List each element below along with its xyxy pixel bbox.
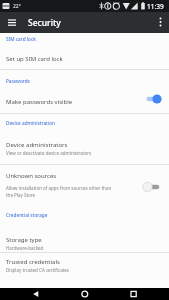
button[interactable] (4, 16, 20, 30)
staticText: Allow installation of apps from sources … (6, 185, 112, 191)
button[interactable] (154, 16, 167, 30)
staticText: 11:39 (147, 2, 164, 11)
staticText: the Play Store (6, 192, 36, 198)
button[interactable]: Set up SIM card lock (0, 50, 169, 69)
staticText: Device administration (6, 120, 55, 126)
staticText: View or deactivate device administrators (6, 150, 92, 156)
staticText: Security (28, 17, 61, 29)
staticText: Storage type (6, 236, 42, 244)
staticText: Make passwords visible (6, 98, 73, 106)
staticText: Hardware-backed (6, 245, 44, 251)
button[interactable]: Trusted credentials (0, 253, 169, 281)
button[interactable]: Device administrators (0, 136, 169, 164)
staticText: Passwords (6, 78, 30, 84)
button[interactable] (26, 288, 46, 300)
button[interactable]: Unknown sources (0, 165, 169, 203)
staticText: SIM card lock (6, 36, 36, 42)
staticText: Set up SIM card lock (6, 55, 63, 63)
staticText: 22° (13, 3, 21, 10)
button[interactable] (123, 288, 143, 300)
staticText: Credential storage (6, 212, 48, 218)
staticText: Display trusted CA certificates (6, 267, 69, 273)
staticText: Device administrators (6, 141, 68, 149)
button[interactable] (75, 288, 95, 300)
staticText: Unknown sources (6, 172, 57, 180)
staticText: Trusted credentials (6, 258, 60, 266)
button[interactable]: Make passwords visible (0, 93, 169, 113)
button[interactable]: Storage type (0, 230, 169, 252)
